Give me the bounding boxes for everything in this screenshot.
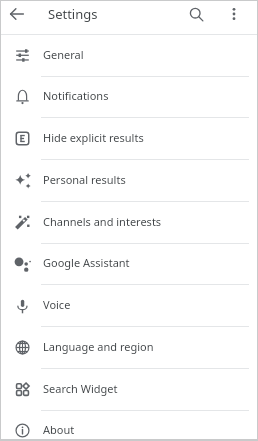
staticText: Voice — [43, 297, 71, 312]
staticText: Google Assistant — [43, 255, 130, 270]
button[interactable]: Voice — [0, 285, 258, 327]
button[interactable]: Notifications — [0, 77, 258, 118]
staticText: Personal results — [43, 172, 126, 187]
button[interactable]: More options — [220, 0, 248, 28]
staticText: Settings — [48, 5, 98, 23]
button[interactable]: Language and region — [0, 327, 258, 369]
button[interactable]: General — [0, 35, 258, 77]
button[interactable]: Search Widget — [0, 369, 258, 411]
staticText: General — [43, 47, 84, 62]
staticText: About — [43, 422, 75, 437]
staticText: Search Widget — [43, 381, 118, 396]
button[interactable]: Google Assistant — [0, 244, 258, 285]
button[interactable]: Search — [182, 0, 210, 28]
staticText: Language and region — [43, 339, 154, 354]
staticText: Channels and interests — [43, 214, 162, 229]
staticText: Notifications — [43, 88, 109, 103]
button[interactable]: About — [0, 411, 258, 441]
button[interactable]: Personal results — [0, 160, 258, 202]
button[interactable]: Channels and interests — [0, 202, 258, 244]
staticText: Hide explicit results — [43, 130, 144, 145]
button[interactable]: Navigate up — [3, 0, 31, 28]
button[interactable]: Hide explicit results — [0, 118, 258, 160]
